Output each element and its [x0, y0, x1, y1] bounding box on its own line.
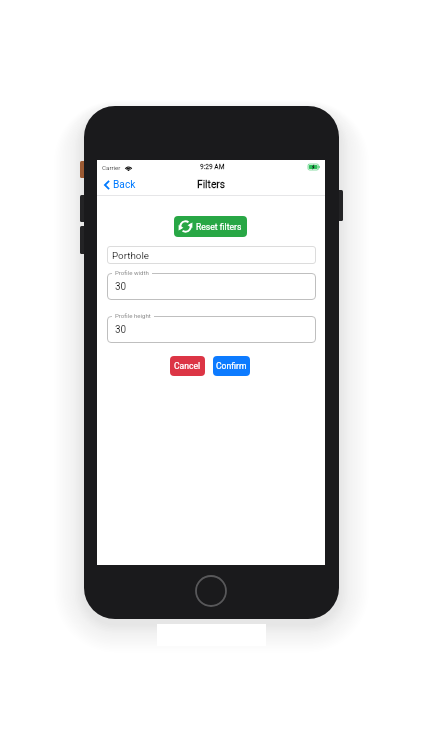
button[interactable]: Cancel	[170, 356, 205, 376]
staticText: Profile height	[115, 312, 151, 319]
staticText: Filters	[197, 179, 226, 191]
staticText: Porthole	[112, 250, 150, 261]
button[interactable]: 30	[107, 316, 316, 343]
staticText: Back	[113, 179, 136, 191]
staticText: Profile width	[115, 269, 149, 276]
staticText: Confirm	[216, 361, 247, 371]
button[interactable]: 30	[107, 273, 316, 300]
button[interactable]: Porthole	[107, 246, 316, 264]
staticText: Cancel	[174, 361, 201, 371]
staticText: 30	[115, 281, 127, 293]
other: Reset filters	[178, 219, 193, 234]
button[interactable]: Reset filters	[174, 216, 247, 237]
button[interactable]: Back	[104, 179, 136, 191]
button[interactable]: Confirm	[213, 356, 250, 376]
staticText: 9:29 AM	[200, 163, 225, 171]
staticText: Carrier	[102, 164, 121, 171]
staticText: 30	[115, 324, 127, 336]
staticText: Reset filters	[196, 222, 242, 232]
